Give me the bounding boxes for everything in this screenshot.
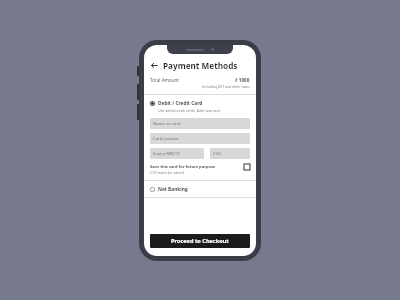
staticText: Save this card for future purpose (150, 164, 216, 169)
button[interactable]: Name on card (150, 118, 250, 129)
staticText: CVV (213, 151, 221, 157)
button[interactable]: Debit / Credit Card (144, 99, 256, 114)
staticText: Use debit/credit cards, Add new card (158, 108, 220, 113)
staticText: Proceed to Checkout (171, 237, 229, 245)
staticText: Expiry MM-YY (153, 151, 180, 157)
button[interactable]: CVV (210, 148, 250, 159)
staticText: Debit / Credit Card (158, 100, 203, 107)
button[interactable]: Back (148, 59, 160, 71)
button[interactable]: Save this card for future purpose (144, 164, 256, 175)
button[interactable]: Proceed to Checkout (150, 234, 250, 248)
staticText: Card number (153, 136, 180, 142)
button[interactable]: Card number (150, 133, 250, 144)
staticText: ₹ 1000 (235, 77, 250, 83)
button[interactable]: Expiry MM-YY (150, 148, 204, 159)
staticText: Net Banking (158, 186, 188, 193)
staticText: Total Amount (150, 77, 179, 83)
staticText: CVV wont be saved. (150, 170, 185, 175)
staticText: Payment Methods (163, 60, 238, 71)
staticText: Including GST and other taxes (202, 84, 250, 89)
staticText: Name on card (153, 121, 181, 127)
button[interactable]: Net Banking (144, 185, 256, 194)
